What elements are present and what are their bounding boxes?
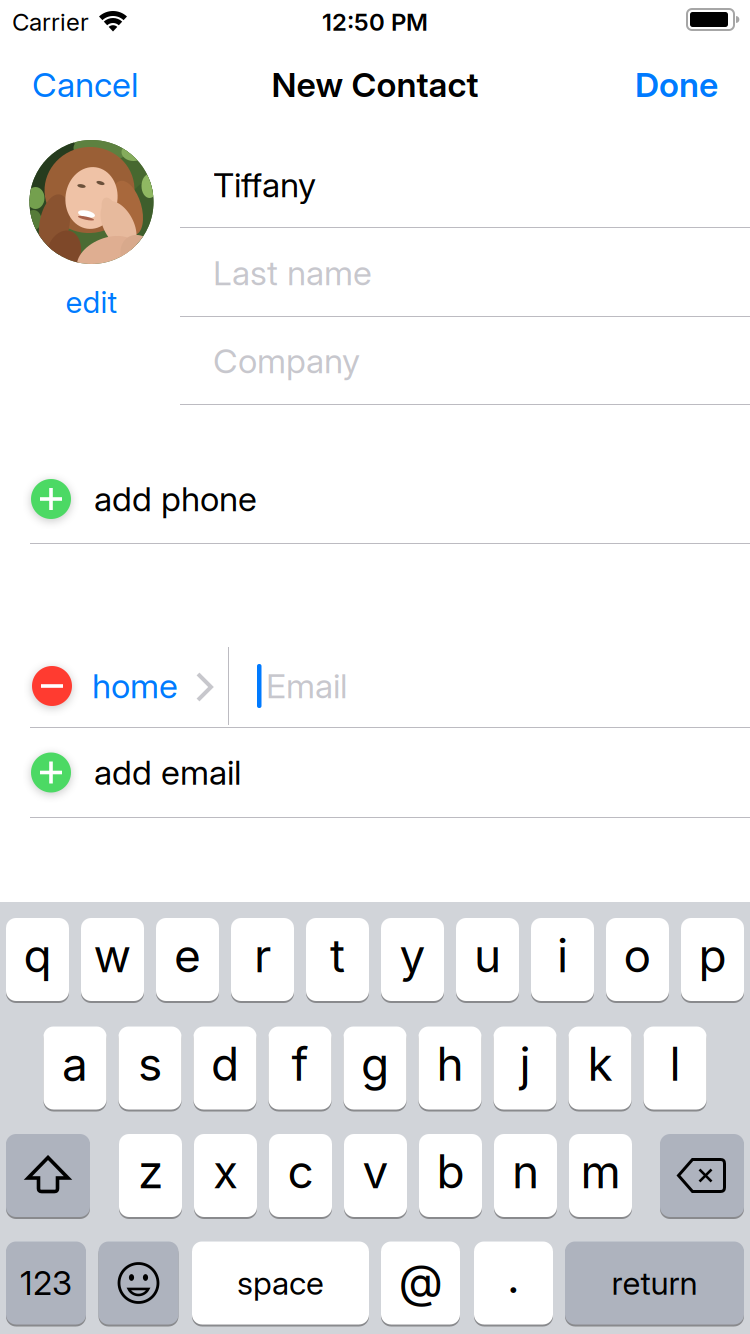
staticText: New Contact <box>271 64 478 105</box>
staticText: Done <box>635 64 718 105</box>
button[interactable]: c <box>269 1134 332 1217</box>
button[interactable]: e <box>156 918 219 1001</box>
staticText: m <box>580 1144 620 1199</box>
staticText: g <box>361 1036 389 1092</box>
button[interactable]: 123 <box>6 1241 86 1324</box>
button[interactable]: k <box>568 1026 631 1109</box>
button[interactable]: f <box>268 1026 331 1109</box>
staticText: n <box>512 1144 539 1199</box>
button[interactable]: edit <box>29 284 153 320</box>
staticText: o <box>623 928 651 983</box>
button[interactable]: Email label home <box>92 642 178 730</box>
button[interactable]: v <box>344 1134 407 1217</box>
button[interactable]: Shift <box>6 1134 90 1217</box>
button[interactable]: add email <box>0 728 750 817</box>
staticText: . <box>507 1250 520 1304</box>
button[interactable]: x <box>194 1134 257 1217</box>
staticText: j <box>519 1036 530 1092</box>
staticText: Last name <box>213 252 372 293</box>
staticText: edit <box>65 284 117 320</box>
staticText: i <box>557 928 568 983</box>
staticText: Carrier <box>12 7 89 36</box>
staticText: x <box>213 1144 238 1199</box>
staticText: h <box>436 1036 463 1092</box>
staticText: l <box>669 1036 680 1092</box>
button[interactable]: add phone <box>0 455 750 543</box>
staticText: b <box>436 1144 464 1199</box>
staticText: add email <box>94 752 241 793</box>
staticText: z <box>138 1144 163 1199</box>
staticText: q <box>23 928 51 983</box>
button[interactable]: m <box>569 1134 632 1217</box>
button[interactable]: q <box>6 918 69 1001</box>
button[interactable]: Email <box>266 642 750 730</box>
button[interactable]: w <box>81 918 144 1001</box>
button[interactable]: i <box>531 918 594 1001</box>
staticText: d <box>211 1036 239 1092</box>
staticText: add phone <box>94 478 257 519</box>
button[interactable]: Last name <box>213 229 750 317</box>
button[interactable]: d <box>193 1026 256 1109</box>
button[interactable]: space <box>192 1241 369 1324</box>
button[interactable]: Contact photo <box>29 140 153 264</box>
staticText: Cancel <box>32 64 138 105</box>
staticText: home <box>92 665 178 706</box>
staticText: 123 <box>20 1263 72 1303</box>
staticText: Email <box>266 665 347 706</box>
staticText: p <box>698 928 726 983</box>
button[interactable]: Company <box>213 317 750 405</box>
staticText: v <box>362 1144 388 1199</box>
button[interactable]: r <box>231 918 294 1001</box>
staticText: u <box>474 928 501 983</box>
staticText: f <box>291 1036 308 1092</box>
button[interactable]: Delete <box>660 1134 744 1217</box>
button[interactable]: First name <box>213 141 750 229</box>
button[interactable]: u <box>456 918 519 1001</box>
button[interactable]: y <box>381 918 444 1001</box>
staticText: e <box>174 928 201 983</box>
button[interactable]: z <box>119 1134 182 1217</box>
button[interactable]: g <box>343 1026 406 1109</box>
staticText: Company <box>213 340 360 381</box>
staticText: r <box>254 928 271 983</box>
button[interactable]: p <box>681 918 744 1001</box>
button[interactable]: n <box>494 1134 557 1217</box>
staticText: k <box>587 1036 612 1092</box>
button[interactable]: Emoji <box>98 1241 178 1324</box>
button[interactable]: @ <box>381 1241 460 1324</box>
button[interactable]: s <box>118 1026 181 1109</box>
button[interactable]: j <box>493 1026 556 1109</box>
button[interactable]: h <box>418 1026 481 1109</box>
staticText: a <box>62 1036 88 1092</box>
button[interactable]: a <box>43 1026 106 1109</box>
button[interactable]: o <box>606 918 669 1001</box>
button[interactable]: t <box>306 918 369 1001</box>
button[interactable]: Remove email <box>32 666 72 706</box>
button[interactable]: Cancel <box>32 64 138 105</box>
button[interactable]: return <box>565 1241 744 1324</box>
button[interactable]: b <box>419 1134 482 1217</box>
staticText: s <box>138 1036 162 1092</box>
staticText: t <box>330 928 345 983</box>
staticText: return <box>611 1264 697 1302</box>
button[interactable]: Done <box>635 64 718 105</box>
staticText: 12:50 PM <box>322 7 428 36</box>
staticText: w <box>93 928 131 983</box>
staticText: space <box>237 1264 324 1302</box>
staticText: @ <box>398 1253 442 1309</box>
button[interactable]: . <box>474 1241 553 1324</box>
staticText: y <box>399 928 425 983</box>
staticText: Tiffany <box>213 164 316 205</box>
button[interactable]: l <box>643 1026 706 1109</box>
staticText: c <box>287 1144 313 1199</box>
